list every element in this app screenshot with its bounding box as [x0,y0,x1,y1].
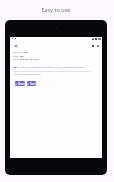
button[interactable]: Edit [90,43,95,48]
staticText: Link [23,50,29,53]
staticText: Easy to use [0,6,113,13]
button[interactable]: Back [13,43,18,48]
staticText: Type: [13,54,19,57]
staticText: Share [18,82,25,86]
staticText: Save [30,82,36,86]
button[interactable]: Save [27,81,36,86]
staticText: Format: [13,50,22,53]
staticText: 2024-01-15 10:21 [20,57,40,60]
button[interactable]: URL: [13,65,85,68]
staticText: URL: [13,65,19,68]
button[interactable]: Copy [95,43,100,48]
staticText: Android operating system [14,73,41,76]
button[interactable]: Share [15,81,25,86]
staticText: QR [20,54,24,57]
staticText: Date: [13,57,19,60]
staticText: https://en.wikipedia.org/wiki/Android_(o… [20,65,85,68]
